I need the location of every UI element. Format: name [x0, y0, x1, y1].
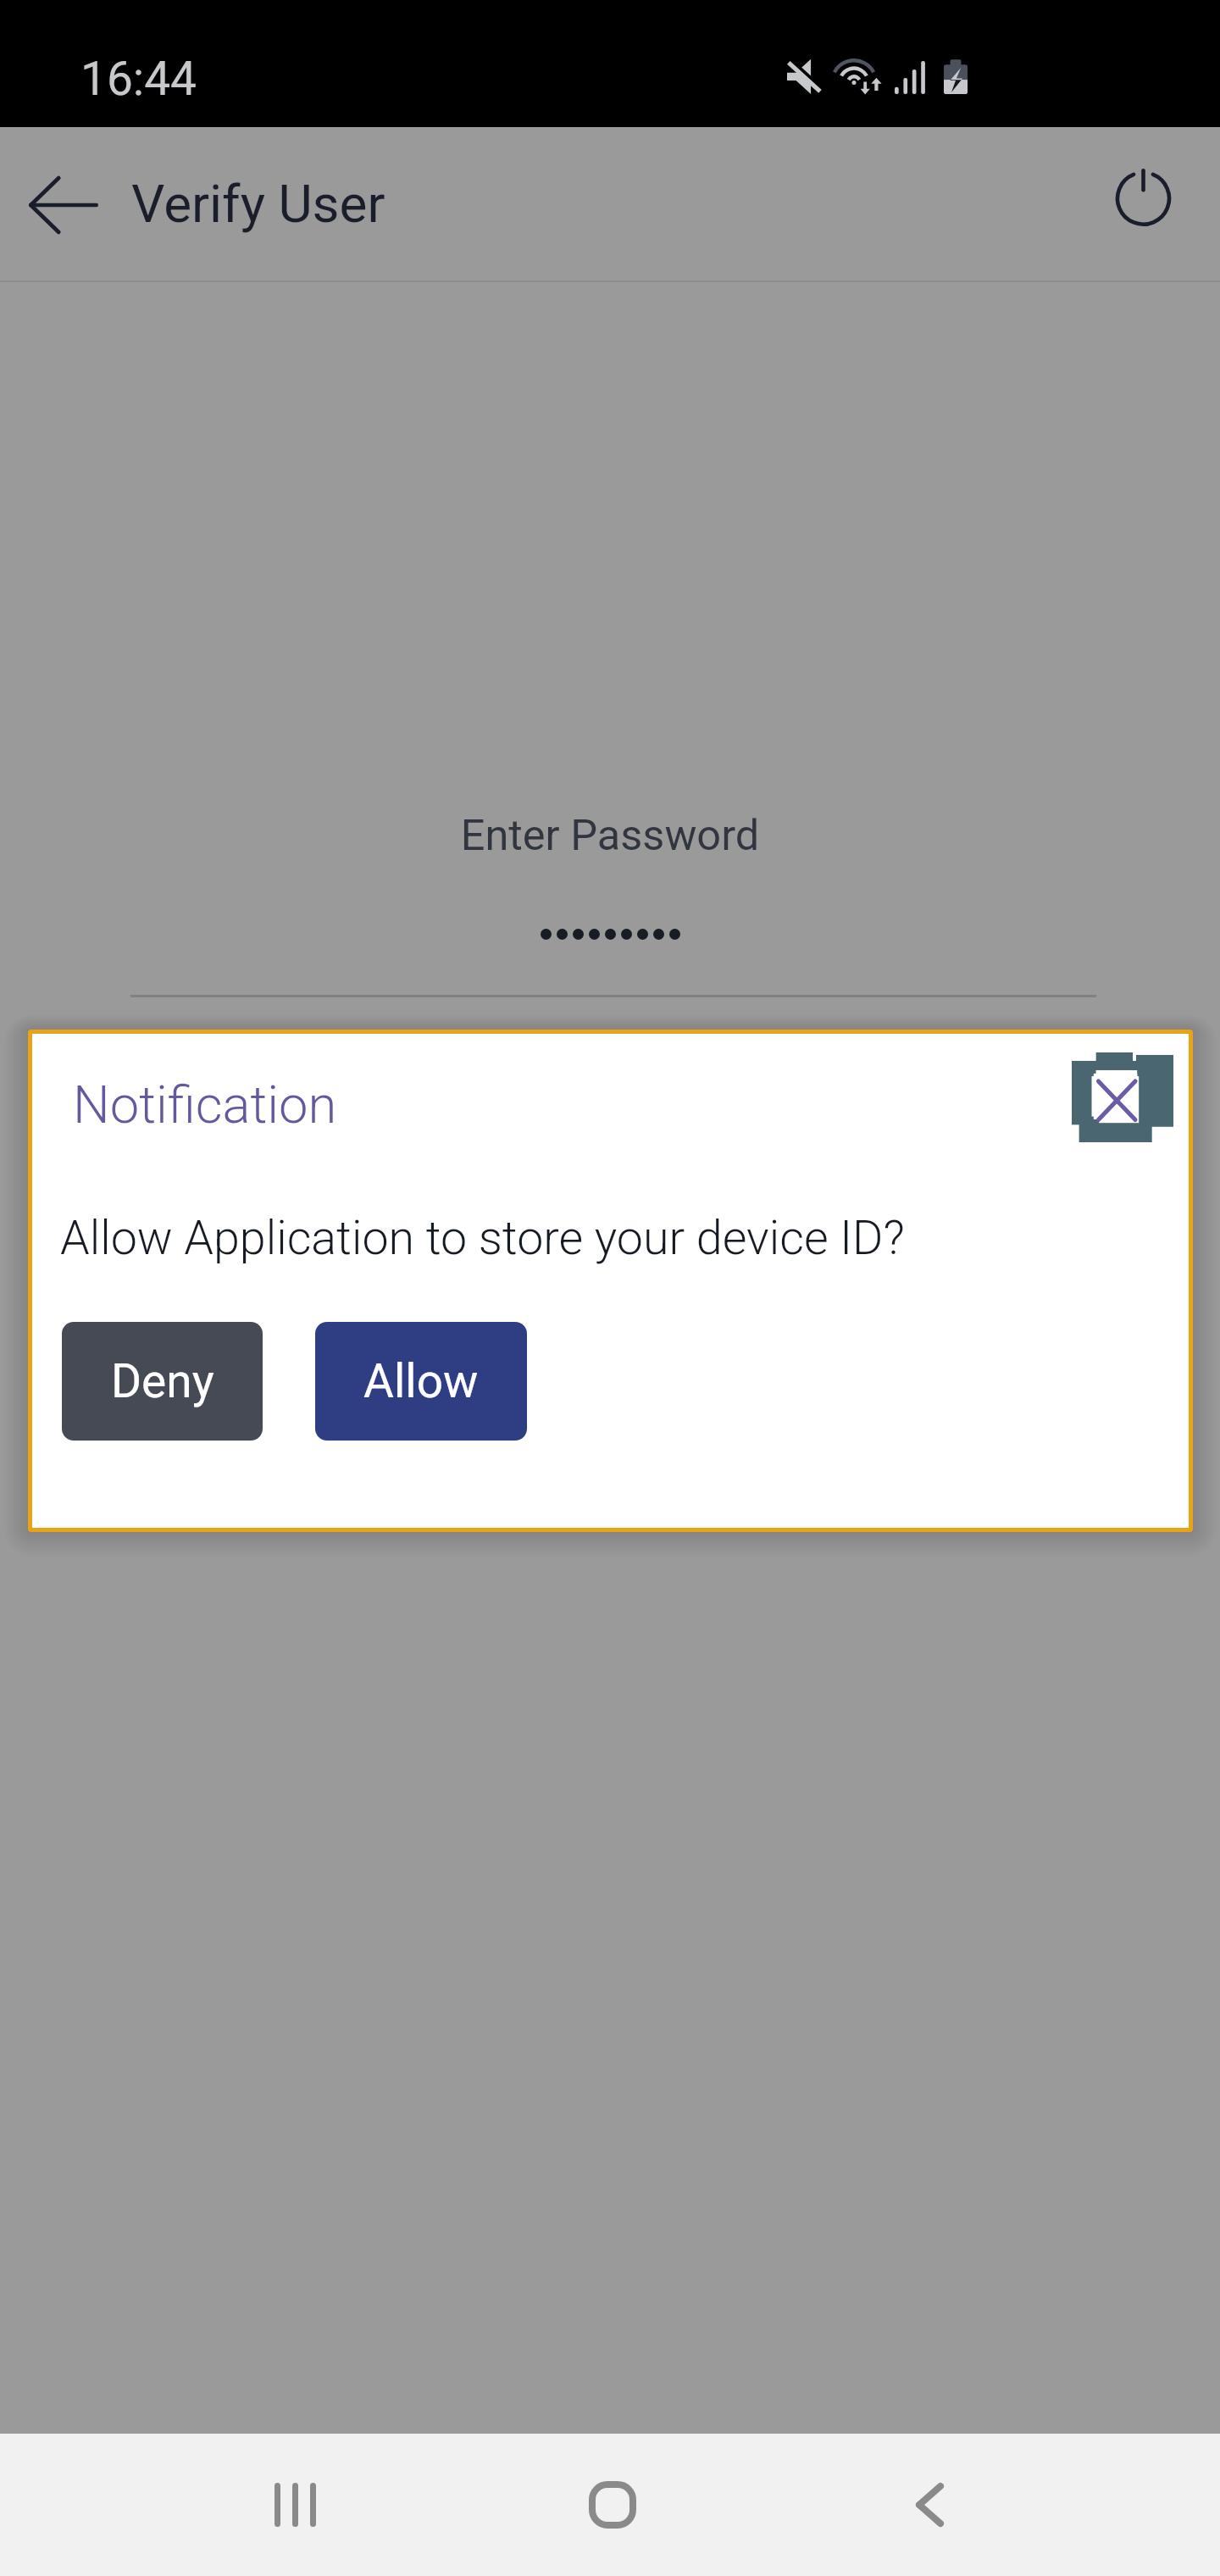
staticText: 16:44 — [80, 52, 197, 106]
staticText: Allow — [363, 1354, 479, 1408]
staticText: Deny — [111, 1354, 214, 1408]
button[interactable]: Back — [862, 2437, 997, 2573]
staticText: Verify User — [131, 173, 385, 235]
button[interactable]: Power — [1090, 144, 1196, 251]
button[interactable]: Close — [1063, 1038, 1182, 1157]
staticText: Allow Application to store your device I… — [60, 1210, 905, 1265]
staticText: Notification — [73, 1074, 337, 1135]
button[interactable]: Allow — [315, 1322, 527, 1441]
button[interactable]: Back — [0, 143, 127, 266]
button[interactable]: Recent apps — [227, 2437, 363, 2573]
button[interactable]: Home — [545, 2437, 680, 2573]
staticText: Enter Password — [0, 810, 1220, 860]
button[interactable]: Deny — [62, 1322, 263, 1441]
